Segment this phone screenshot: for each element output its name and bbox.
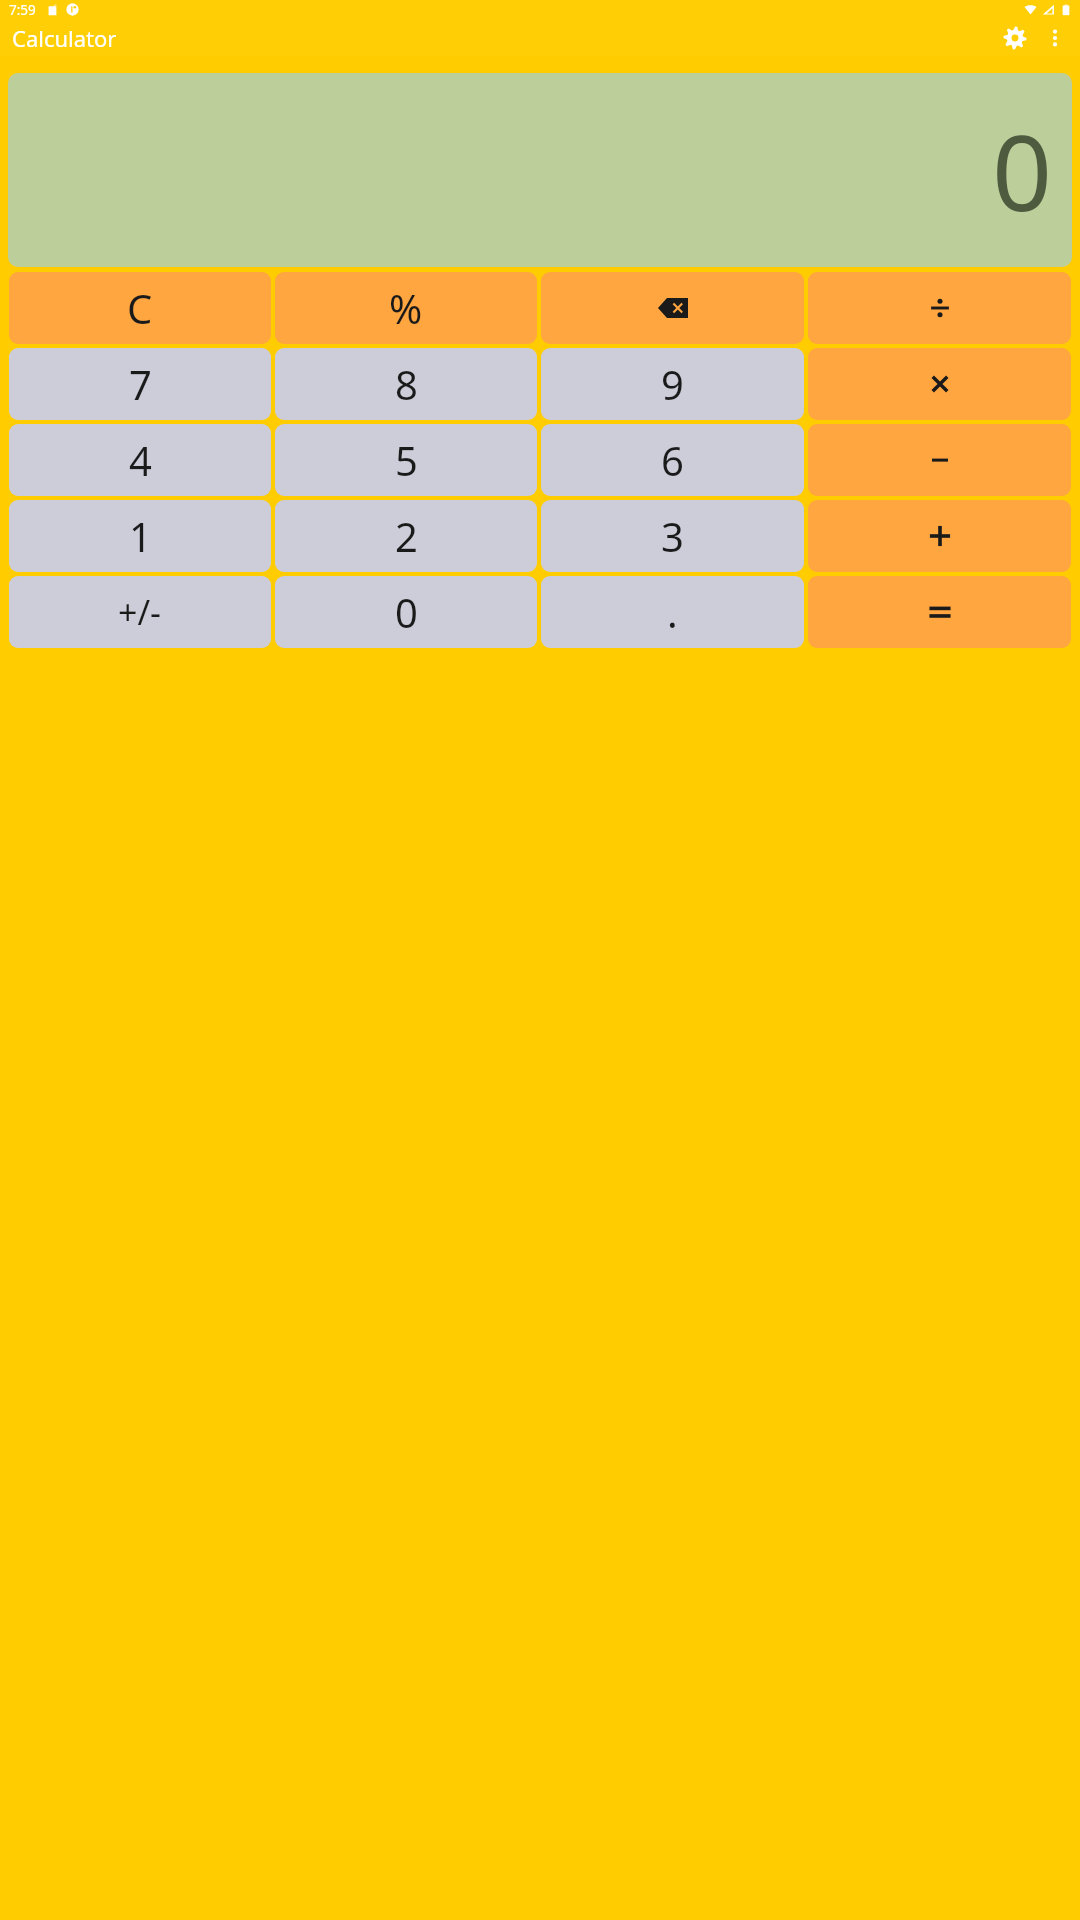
staticText: 8 [395, 357, 418, 411]
staticText: 7:59 [9, 1, 36, 19]
button[interactable]: 7 [9, 348, 271, 420]
button[interactable]: Plus [808, 500, 1071, 572]
staticText: C [127, 281, 153, 335]
staticText: 0 [991, 99, 1052, 242]
staticText: 5 [395, 433, 418, 487]
staticText: 9 [661, 357, 684, 411]
staticText: 6 [661, 433, 684, 487]
staticText: 3 [661, 509, 684, 563]
staticText: Calculator [12, 23, 117, 53]
button[interactable]: Divide [808, 272, 1071, 344]
staticText: 1 [129, 509, 152, 563]
button[interactable]: 8 [275, 348, 537, 420]
button[interactable]: Backspace [541, 272, 804, 344]
button[interactable]: 1 [9, 500, 271, 572]
button[interactable]: % [275, 272, 537, 344]
button[interactable]: Multiply [808, 348, 1071, 420]
button[interactable]: More options [1036, 19, 1074, 56]
staticText: 0 [395, 585, 418, 639]
button[interactable]: 2 [275, 500, 537, 572]
button[interactable]: . [541, 576, 804, 648]
button[interactable]: +/- [9, 576, 271, 648]
staticText: % [389, 281, 423, 335]
button[interactable]: 6 [541, 424, 804, 496]
button[interactable]: 9 [541, 348, 804, 420]
staticText: 2 [395, 509, 418, 563]
staticText: +/- [118, 589, 162, 635]
button[interactable]: 5 [275, 424, 537, 496]
staticText: . [667, 585, 678, 639]
button[interactable]: 3 [541, 500, 804, 572]
button[interactable]: C [9, 272, 271, 344]
button[interactable]: Minus [808, 424, 1071, 496]
staticText: 4 [129, 433, 152, 487]
button[interactable]: Equals [808, 576, 1071, 648]
button[interactable]: Settings [994, 19, 1036, 56]
button[interactable]: 0 [8, 73, 1072, 267]
button[interactable]: 0 [275, 576, 537, 648]
staticText: 7 [129, 357, 152, 411]
button[interactable]: 4 [9, 424, 271, 496]
